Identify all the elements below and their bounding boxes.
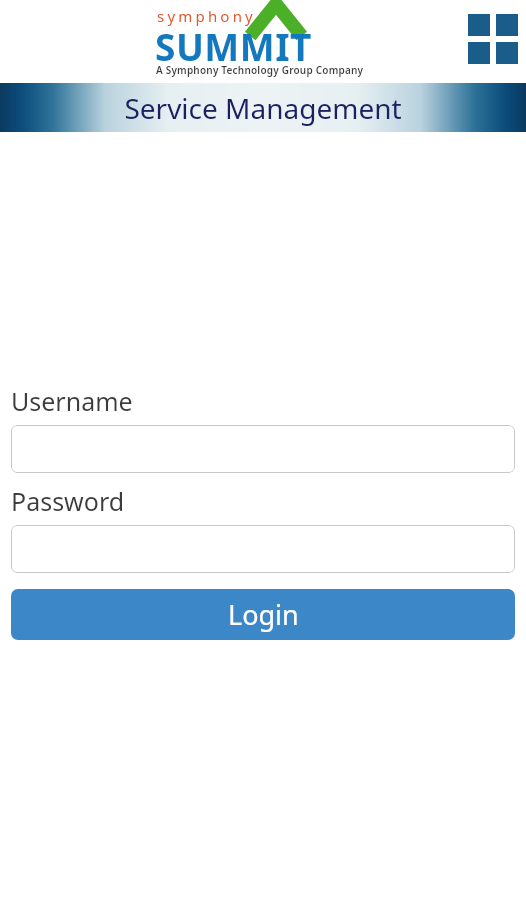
button[interactable]: Password input xyxy=(11,525,515,573)
staticText: A Symphony Technology Group Company xyxy=(156,63,364,77)
button[interactable]: Login xyxy=(11,589,515,640)
staticText: Service Management xyxy=(124,89,402,127)
staticText: Login xyxy=(228,596,299,633)
staticText: Username xyxy=(11,384,133,418)
staticText: Password xyxy=(11,484,125,518)
staticText: symphony xyxy=(157,6,256,26)
button[interactable]: Username input xyxy=(11,425,515,473)
button[interactable]: Apps menu xyxy=(468,14,518,64)
staticText: SUMMIT xyxy=(155,21,312,71)
